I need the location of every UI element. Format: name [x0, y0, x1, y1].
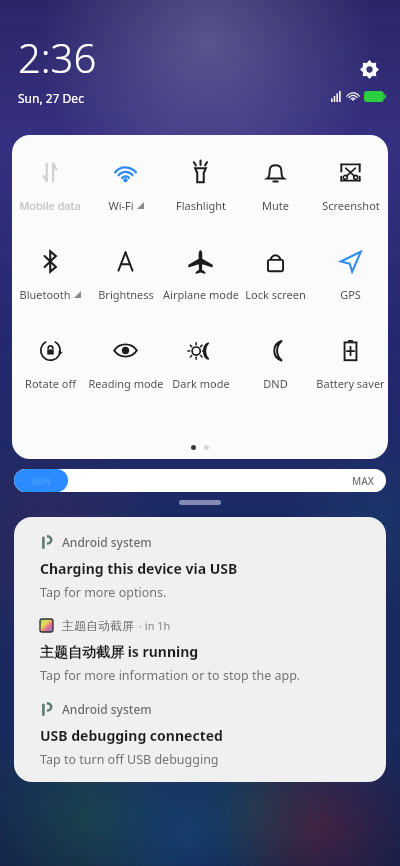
button[interactable]: 主题自动截屏 — [14, 601, 386, 684]
button[interactable]: Rotate off — [12, 335, 88, 393]
staticText: 2:36 — [18, 30, 97, 84]
button[interactable]: GPS — [313, 246, 388, 304]
staticText: Charging this device via USB — [40, 559, 238, 578]
button[interactable]: Bluetooth — [12, 246, 88, 304]
staticText: Battery saver — [316, 376, 385, 391]
button[interactable]: Android system — [14, 684, 386, 768]
staticText: Android system — [62, 534, 152, 550]
staticText: 主题自动截屏 — [62, 618, 134, 633]
staticText: Brightness — [98, 287, 154, 302]
staticText: Screenshot — [322, 198, 380, 213]
button[interactable]: Mute — [238, 157, 313, 215]
button[interactable]: Screenshot — [313, 157, 388, 215]
staticText: GPS — [340, 287, 361, 302]
staticText: MAX — [352, 474, 374, 488]
staticText: Tap for more options. — [40, 584, 167, 601]
staticText: Lock screen — [245, 287, 306, 302]
button[interactable]: Drag handle — [179, 500, 221, 505]
button[interactable]: Wi-Fi — [88, 157, 163, 215]
button[interactable]: Airplane mode — [163, 246, 238, 304]
staticText: Tap to turn off USB debugging — [40, 751, 219, 768]
button[interactable]: Reading mode — [88, 335, 163, 393]
staticText: Airplane mode — [163, 287, 238, 302]
button[interactable]: Brightness slider — [14, 469, 386, 492]
button[interactable]: Android system — [14, 517, 386, 601]
staticText: Rotate off — [25, 376, 76, 391]
staticText: 主题自动截屏 is running — [40, 642, 199, 661]
staticText: DND — [263, 376, 288, 391]
staticText: Dark mode — [172, 376, 230, 391]
staticText: Mute — [262, 198, 289, 213]
staticText: Mobile data — [19, 198, 81, 213]
staticText: Android system — [62, 701, 152, 717]
button[interactable]: Settings — [352, 52, 386, 86]
staticText: MIN — [32, 475, 51, 487]
button[interactable]: Lock screen — [238, 246, 313, 304]
staticText: Tap for more information or to stop the … — [40, 667, 301, 684]
staticText: · in 1h — [139, 618, 171, 633]
button[interactable]: Flashlight — [163, 157, 238, 215]
staticText: USB debugging connected — [40, 726, 223, 745]
button[interactable]: Mobile data — [12, 157, 88, 215]
staticText: Bluetooth — [19, 287, 71, 302]
staticText: Sun, 27 Dec — [18, 90, 84, 106]
staticText: Flashlight — [176, 198, 226, 213]
button[interactable]: DND — [238, 335, 313, 393]
staticText: Wi-Fi — [108, 198, 134, 213]
button[interactable]: Dark mode — [163, 335, 238, 393]
button[interactable]: Brightness — [88, 246, 163, 304]
staticText: Reading mode — [88, 376, 163, 391]
button[interactable]: Battery saver — [313, 335, 388, 393]
